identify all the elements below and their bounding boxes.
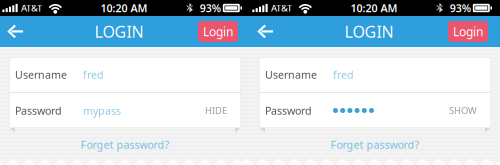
- staticText: AT&T: [271, 2, 292, 14]
- staticText: AT&T: [21, 2, 42, 14]
- staticText: mypass: [83, 103, 121, 118]
- staticText: 10:20 AM: [100, 1, 147, 15]
- staticText: fred: [83, 67, 104, 82]
- button[interactable]: Login: [448, 16, 500, 47]
- staticText: HIDE: [205, 104, 227, 117]
- button[interactable]: Login: [198, 16, 250, 47]
- button[interactable]: HIDE: [189, 99, 236, 121]
- staticText: Login: [203, 23, 233, 39]
- button[interactable]: SHOW: [439, 99, 486, 121]
- staticText: LOGIN: [344, 21, 393, 42]
- staticText: 10:20 AM: [350, 1, 397, 15]
- staticText: SHOW: [449, 104, 477, 117]
- staticText: Username: [265, 67, 317, 82]
- button[interactable]: Back: [0, 16, 34, 47]
- staticText: Username: [15, 67, 67, 82]
- staticText: fred: [333, 67, 354, 82]
- staticText: LOGIN: [94, 21, 143, 42]
- button[interactable]: Forget password?: [320, 132, 429, 157]
- staticText: Login: [453, 23, 483, 39]
- staticText: 93%: [450, 1, 471, 15]
- staticText: Password: [15, 103, 62, 118]
- staticText: Forget password?: [80, 137, 169, 152]
- staticText: 93%: [200, 1, 221, 15]
- staticText: Forget password?: [330, 137, 419, 152]
- staticText: Password: [265, 103, 312, 118]
- button[interactable]: Back: [250, 16, 284, 47]
- button[interactable]: Forget password?: [70, 132, 179, 157]
